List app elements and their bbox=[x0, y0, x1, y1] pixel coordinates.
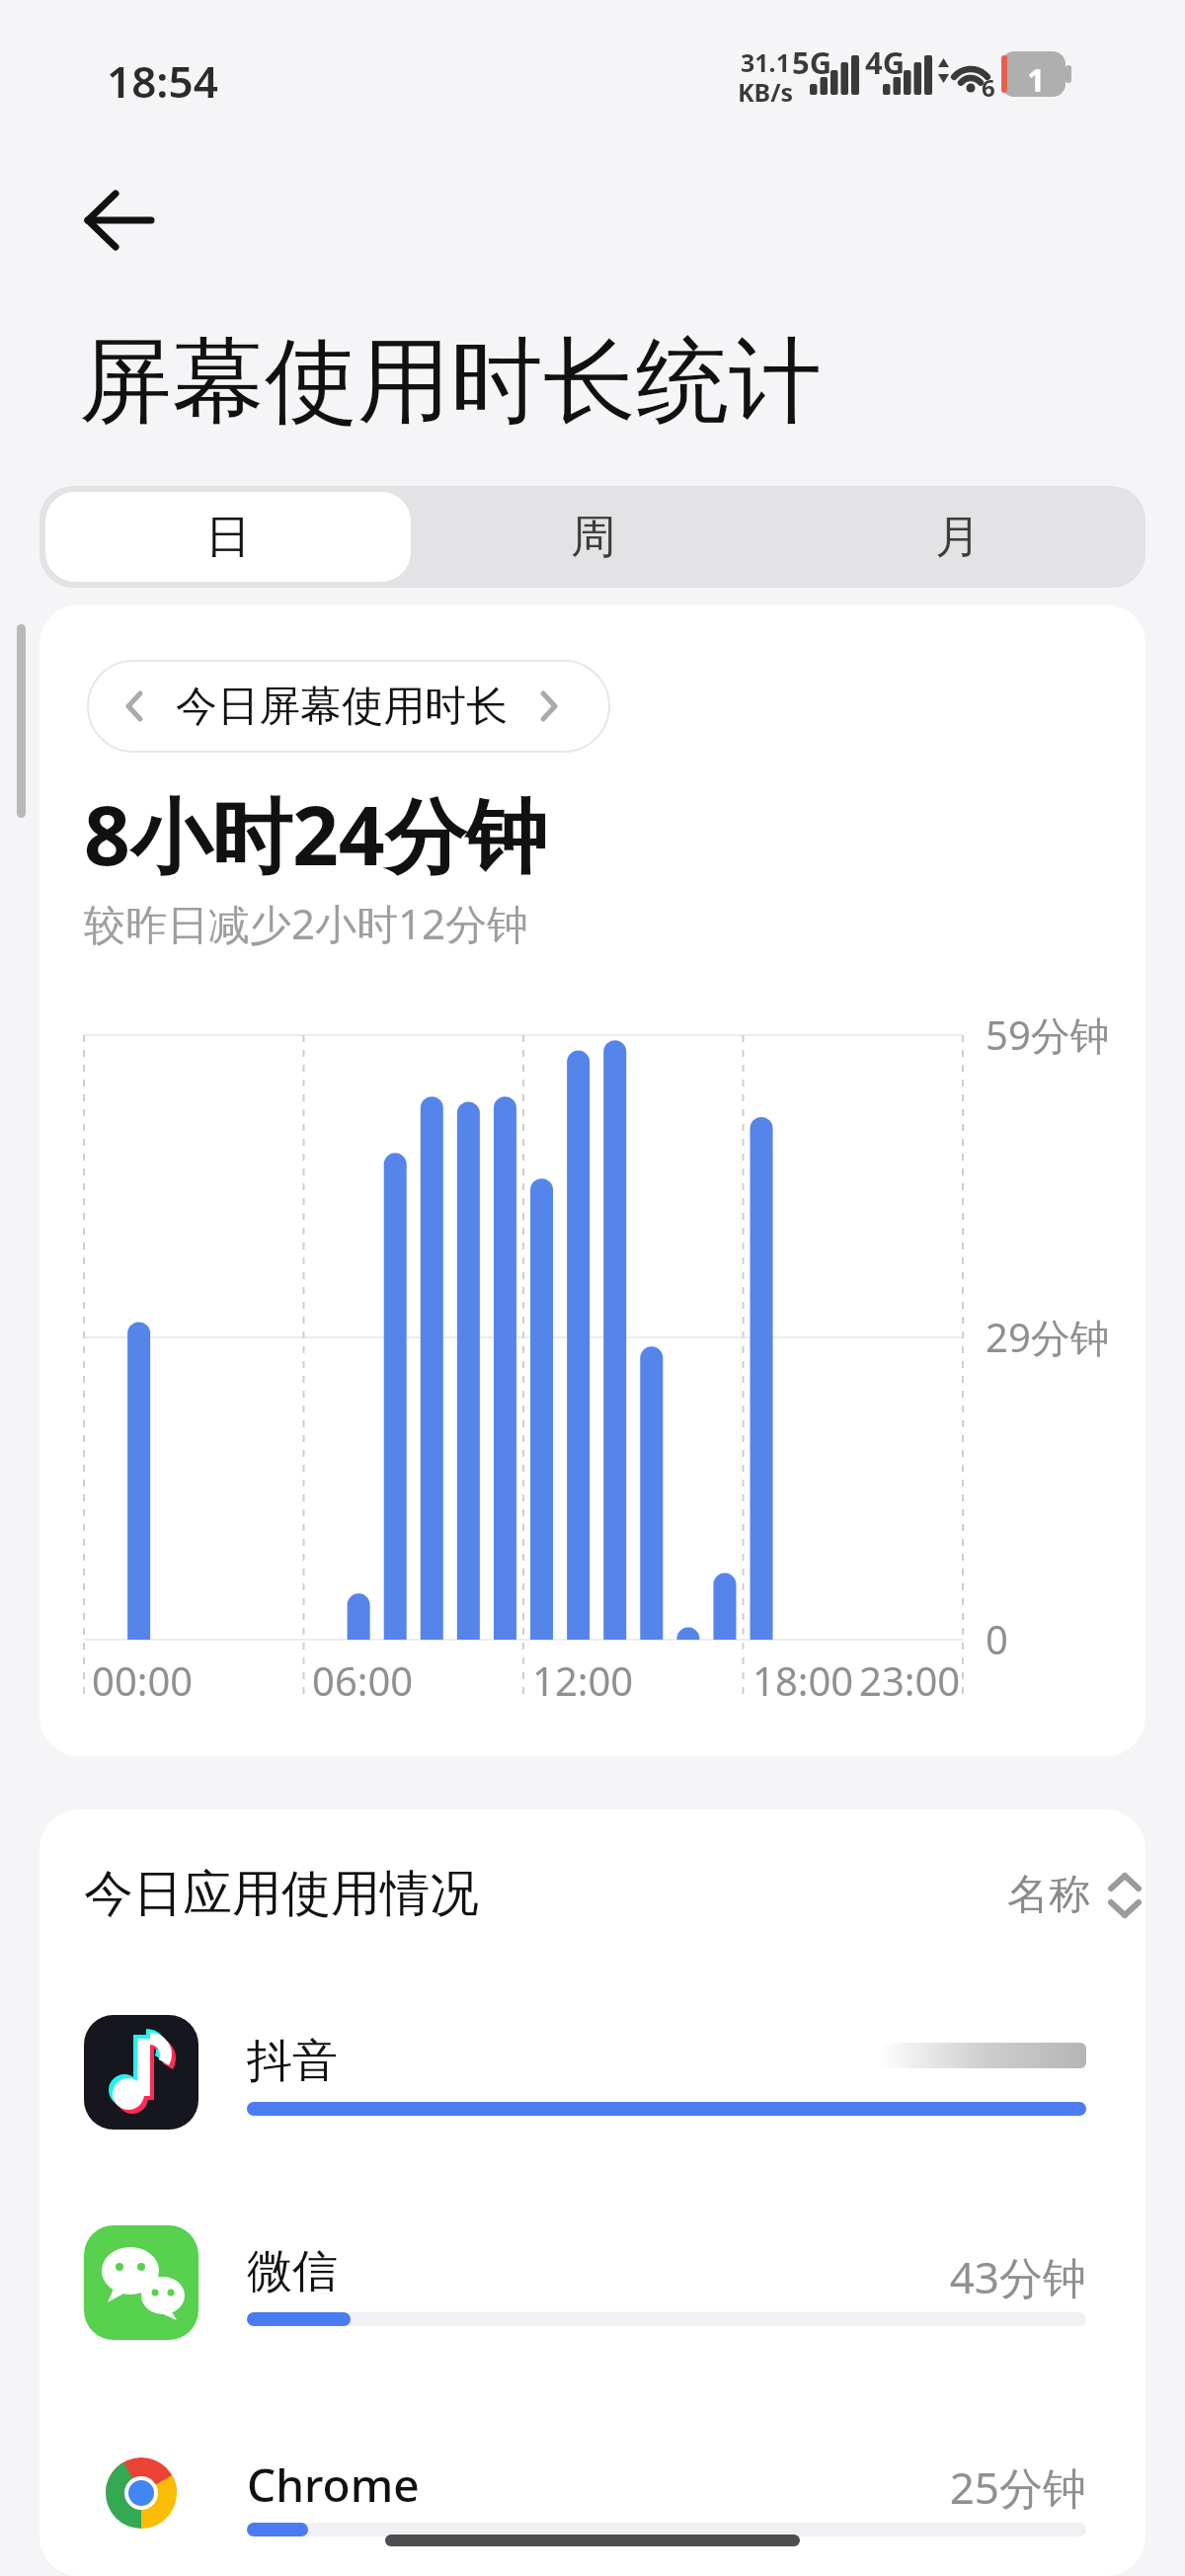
staticText: 06:00 bbox=[312, 1653, 414, 1707]
staticText: 6 bbox=[982, 71, 995, 104]
staticText: 12:00 bbox=[532, 1653, 634, 1707]
staticText: 周 bbox=[571, 509, 616, 566]
staticText: 今日应用使用情况 bbox=[84, 1863, 479, 1925]
staticText: 25分钟 bbox=[691, 2457, 1086, 2517]
staticText: 00:00 bbox=[92, 1653, 194, 1707]
staticText: 0 bbox=[986, 1612, 1008, 1665]
staticText: 1 bbox=[1027, 58, 1046, 102]
staticText: 59分钟 bbox=[986, 1007, 1110, 1062]
button[interactable]: 抖音 bbox=[39, 2015, 1145, 2193]
button[interactable] bbox=[84, 190, 153, 251]
button[interactable]: 日 bbox=[45, 492, 411, 582]
button[interactable]: 周 bbox=[411, 492, 775, 582]
staticText: Chrome bbox=[247, 2454, 420, 2516]
staticText: KB/s bbox=[738, 75, 794, 109]
button[interactable]: 月 bbox=[775, 492, 1140, 582]
staticText: 屏幕使用时长统计 bbox=[79, 323, 822, 440]
staticText: 43分钟 bbox=[691, 2247, 1086, 2306]
staticText: 今日屏幕使用时长 bbox=[176, 681, 508, 733]
staticText: 29分钟 bbox=[986, 1310, 1110, 1364]
staticText: 日 bbox=[205, 509, 251, 566]
staticText: 8小时24分钟 bbox=[84, 778, 547, 889]
button[interactable]: 微信 bbox=[39, 2225, 1145, 2403]
staticText: 抖音 bbox=[247, 2033, 338, 2090]
staticText: 较昨日减少2小时12分钟 bbox=[84, 895, 529, 951]
staticText: 23:00 bbox=[859, 1653, 961, 1707]
button[interactable]: 今日屏幕使用时长 bbox=[87, 660, 610, 753]
staticText: 4G bbox=[865, 41, 906, 83]
staticText: 名称 bbox=[1007, 1869, 1090, 1921]
staticText: 18:00 bbox=[752, 1653, 854, 1707]
button[interactable]: Chrome bbox=[39, 2436, 1145, 2576]
staticText: 18:54 bbox=[107, 51, 218, 111]
staticText: 31.1 bbox=[741, 45, 790, 79]
button[interactable]: 名称 bbox=[1007, 1869, 1142, 1921]
staticText: 月 bbox=[935, 509, 981, 566]
staticText: 微信 bbox=[247, 2243, 338, 2300]
staticText: 5G bbox=[792, 41, 832, 83]
